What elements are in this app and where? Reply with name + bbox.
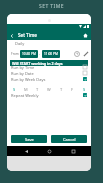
staticText: 10:30 PM xyxy=(22,52,36,56)
button[interactable]: W xyxy=(45,85,53,93)
staticText: Will START working in 2 days xyxy=(12,61,63,66)
button[interactable]: Edit xyxy=(81,49,90,58)
button[interactable]: F xyxy=(68,85,76,93)
button[interactable]: Repeat Weekly xyxy=(7,93,91,99)
staticText: Run by Week Days xyxy=(11,77,46,82)
button[interactable]: Back xyxy=(7,31,16,40)
staticText: W xyxy=(47,87,51,92)
button[interactable]: Home xyxy=(44,146,54,156)
staticText: - xyxy=(38,51,42,56)
button[interactable]: Recents xyxy=(68,146,78,156)
staticText: Set Time xyxy=(18,32,37,38)
button[interactable]: 11:00 PM xyxy=(42,50,60,58)
button[interactable]: Run by Date xyxy=(7,72,91,78)
button[interactable]: 10:30 PM xyxy=(20,50,38,58)
staticText: Run by Date xyxy=(11,71,34,76)
staticText: Save xyxy=(25,137,34,142)
button[interactable]: Run by Week Days xyxy=(7,78,91,84)
staticText: S xyxy=(13,87,16,92)
staticText: M xyxy=(24,87,28,92)
staticText: Cancel xyxy=(63,137,76,142)
staticText: Run by Time xyxy=(11,65,35,70)
button[interactable]: M xyxy=(22,85,30,93)
staticText: Repeat Weekly xyxy=(11,93,39,98)
button[interactable]: T xyxy=(57,85,65,93)
staticText: From xyxy=(11,52,19,56)
button[interactable]: T xyxy=(33,85,41,93)
button[interactable]: Home xyxy=(80,30,90,40)
button[interactable]: Pick time xyxy=(72,49,81,58)
staticText: S xyxy=(83,87,86,92)
staticText: 11:00 PM xyxy=(44,52,58,56)
staticText: F xyxy=(71,87,74,92)
staticText: SET TIME xyxy=(39,3,64,10)
staticText: T xyxy=(60,87,63,92)
button[interactable]: Save xyxy=(11,135,47,143)
button[interactable]: Back xyxy=(21,146,31,156)
button[interactable]: S xyxy=(10,85,18,93)
button[interactable]: Cancel xyxy=(51,135,87,143)
button[interactable]: S xyxy=(80,85,88,93)
staticText: Daily xyxy=(15,41,25,46)
staticText: T xyxy=(36,87,39,92)
button[interactable]: Run by Time xyxy=(7,66,91,72)
